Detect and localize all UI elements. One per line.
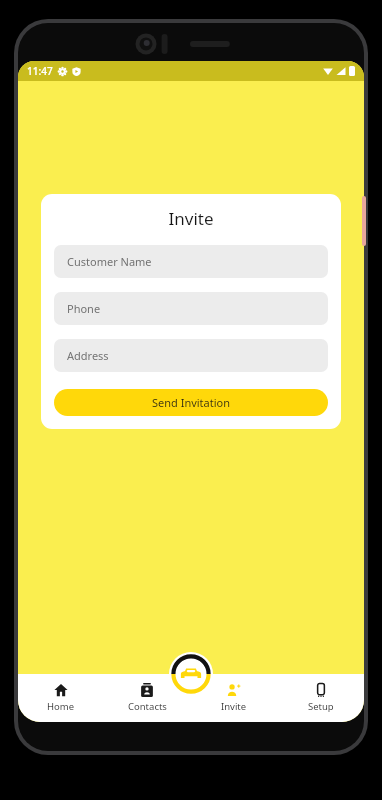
staticText: Home [47,700,75,713]
button[interactable]: Address [54,339,328,372]
staticText: Send Invitation [152,395,231,410]
button[interactable]: Setup [277,674,364,722]
button[interactable]: Invite [190,674,277,722]
staticText: Address [67,348,109,363]
staticText: 11:47 [27,64,53,78]
button[interactable]: Phone [54,292,328,325]
button[interactable]: Ride [169,652,213,696]
staticText: Phone [67,301,101,316]
button[interactable]: Send Invitation [54,389,328,416]
button[interactable]: Home [18,674,104,722]
button[interactable]: Contacts [104,674,190,722]
staticText: Setup [308,700,334,713]
staticText: Contacts [128,700,167,713]
staticText: Customer Name [67,254,152,269]
staticText: Invite [221,700,247,713]
button[interactable]: Customer Name [54,245,328,278]
staticText: Invite [54,207,328,230]
